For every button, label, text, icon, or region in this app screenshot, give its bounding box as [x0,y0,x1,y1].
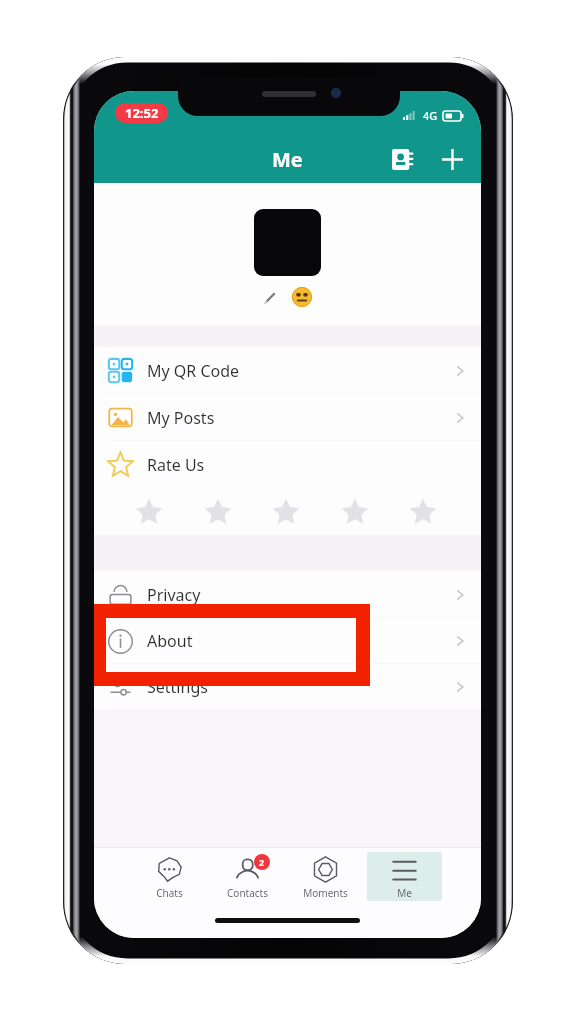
staticText: Me [272,146,303,173]
button[interactable]: My QR Code [94,347,481,394]
staticText: My Posts [147,407,215,429]
staticText: 2 [259,856,265,868]
staticText: 12:52 [125,104,159,122]
button[interactable]: Contacts [385,142,419,176]
staticText: Privacy [147,584,201,606]
staticText: Me [397,886,412,900]
staticText: Settings [147,676,208,698]
button[interactable]: About [94,618,481,664]
button[interactable]: Privacy [94,571,481,618]
button[interactable]: Rate Us [94,441,481,535]
staticText: 4G [423,108,438,123]
button[interactable]: Settings [94,664,481,710]
button[interactable]: 2 [210,852,284,901]
staticText: Contacts [227,886,268,900]
staticText: My QR Code [147,360,240,382]
button[interactable]: Chats [132,852,206,901]
button[interactable]: Me [367,852,442,901]
button[interactable]: Add [435,142,469,176]
staticText: Rate Us [147,454,205,476]
staticText: Moments [303,886,348,900]
button[interactable]: Profile photo [254,209,321,276]
button[interactable]: Moments [288,852,363,901]
staticText: Chats [156,886,183,900]
staticText: About [147,630,193,652]
button[interactable]: My Posts [94,394,481,441]
